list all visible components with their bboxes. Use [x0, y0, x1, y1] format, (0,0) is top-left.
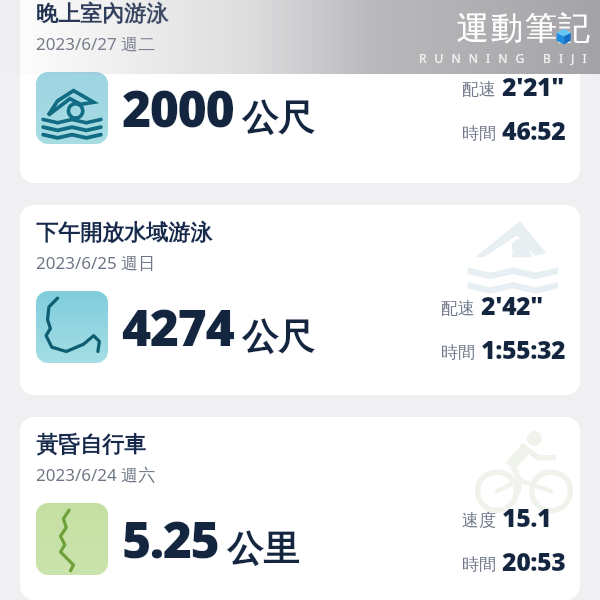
staticText: R U N N I N G	[419, 50, 527, 66]
staticText: 晚上室內游泳	[36, 0, 168, 28]
staticText: 15.1	[502, 500, 552, 534]
staticText: 20:53	[502, 544, 566, 578]
staticText: 5.25	[122, 505, 219, 573]
staticText: 配速	[462, 79, 496, 100]
staticText: 1:55:32	[481, 332, 566, 366]
button[interactable]: 下午開放水域游泳	[20, 205, 580, 395]
staticText: 46:52	[502, 113, 566, 147]
staticText: 速度	[462, 510, 496, 531]
staticText: 2'21"	[502, 69, 564, 103]
staticText: 4274	[122, 293, 234, 361]
staticText: 2'42"	[481, 288, 543, 322]
staticText: 2000	[122, 74, 234, 142]
staticText: 2023/6/24 週六	[36, 463, 156, 486]
staticText: 記	[558, 8, 590, 48]
staticText: 時間	[441, 342, 475, 363]
staticText: 下午開放水域游泳	[36, 219, 212, 247]
staticText: 配速	[441, 298, 475, 319]
staticText: 公尺	[242, 95, 314, 140]
staticText: 黃昏自行車	[36, 431, 146, 459]
staticText: 公里	[227, 526, 299, 571]
button[interactable]: 黃昏自行車	[20, 417, 580, 600]
staticText: 公尺	[242, 314, 314, 359]
staticText: 2023/6/27 週二	[36, 32, 156, 55]
staticText: 時間	[462, 554, 496, 575]
staticText: 2023/6/25 週日	[36, 251, 156, 274]
button[interactable]: 晚上室內游泳	[20, 0, 580, 183]
staticText: 運動筆	[456, 8, 558, 48]
staticText: 時間	[462, 123, 496, 144]
staticText: B I J I	[543, 50, 590, 66]
